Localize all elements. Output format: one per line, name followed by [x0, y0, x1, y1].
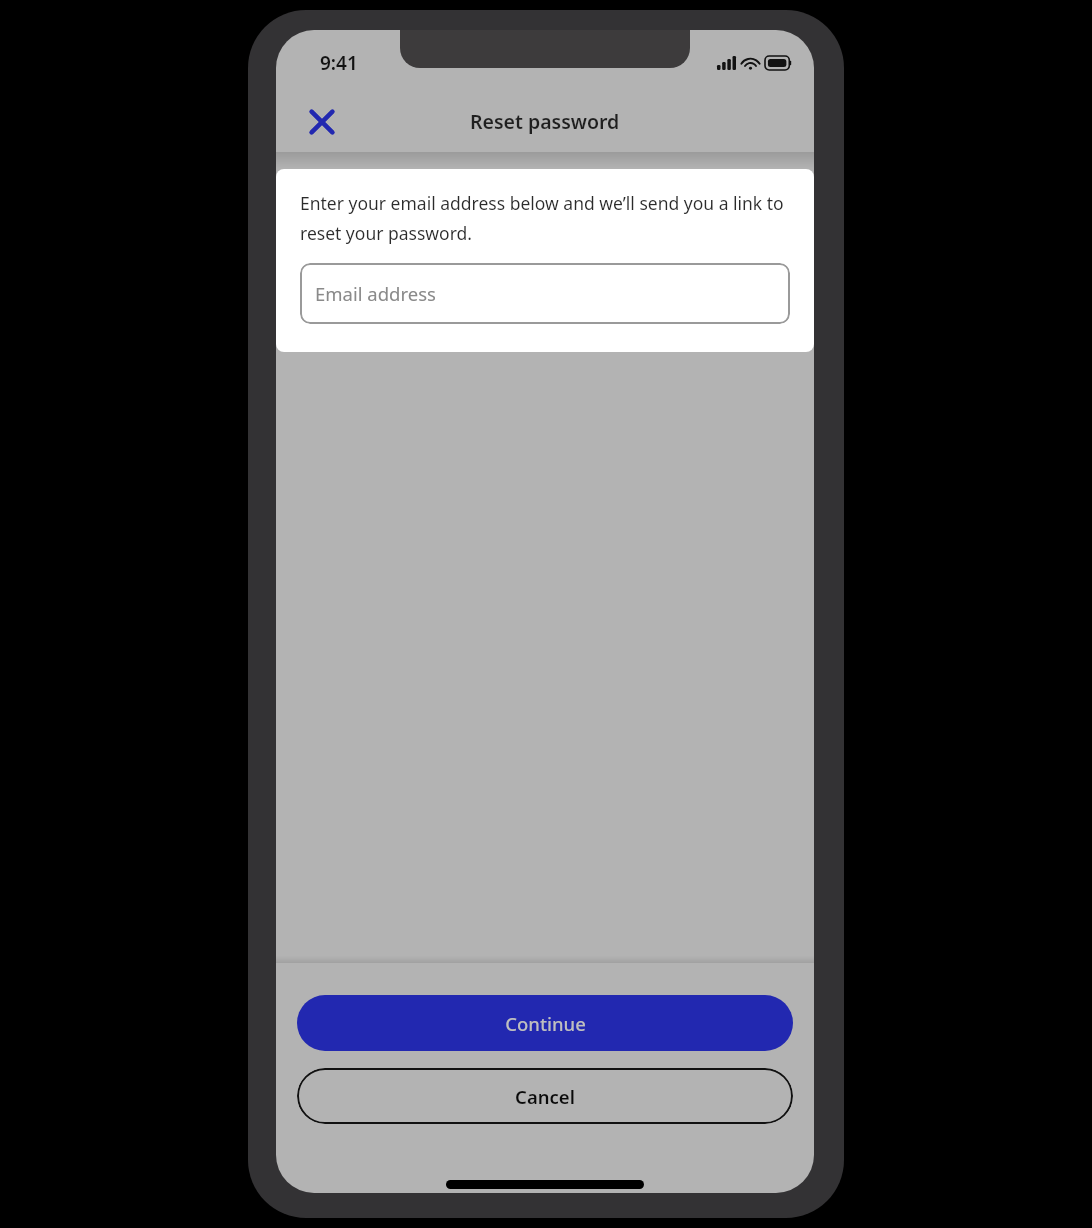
staticText: Email address: [315, 281, 436, 306]
staticText: Continue: [505, 1011, 586, 1036]
staticText: Cancel: [515, 1084, 575, 1109]
staticText: Reset password: [470, 108, 620, 135]
button[interactable]: Email address: [300, 263, 790, 324]
staticText: 9:41: [320, 50, 358, 76]
button[interactable]: Cancel: [297, 1068, 793, 1124]
staticText: Enter your email address below and we’ll…: [300, 191, 790, 245]
button[interactable]: Close: [300, 100, 344, 144]
button[interactable]: Continue: [297, 995, 793, 1051]
